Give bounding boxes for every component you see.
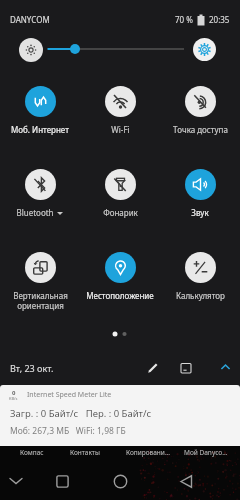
staticText: Internet Speed Meter Lite (27, 390, 112, 400)
button[interactable] (193, 38, 216, 61)
button[interactable]: Точка доступа (160, 66, 240, 149)
staticText: Компас (20, 448, 44, 457)
staticText: Фонарик (103, 207, 138, 218)
staticText: Wi-Fi (111, 124, 130, 135)
staticText: 20:35 (209, 14, 230, 25)
button[interactable]: Wi-Fi (80, 66, 160, 149)
staticText: Точка доступа (173, 124, 228, 135)
staticText: 0 (12, 389, 16, 397)
button[interactable] (144, 359, 162, 377)
staticText: Моб: 267,3 МБ WiFi: 1,98 ГБ (10, 425, 126, 437)
button[interactable]: Местоположение (80, 232, 160, 315)
staticText: 70 % (175, 14, 193, 25)
staticText: Местоположение (86, 290, 154, 301)
staticText: KB/s (9, 396, 18, 401)
staticText: Копировани... (126, 448, 171, 457)
staticText: Калькулятор (176, 290, 225, 301)
staticText: Моб. Интернет (11, 124, 69, 135)
staticText: DANYCOM (10, 14, 50, 25)
button[interactable]: Вертикальная ориентация (0, 232, 80, 315)
button[interactable] (177, 359, 195, 377)
staticText: Звук (191, 207, 209, 218)
button[interactable]: Фонарик (80, 149, 160, 232)
button[interactable]: Bluetooth (0, 149, 80, 232)
button[interactable]: Звук (160, 149, 240, 232)
button[interactable] (19, 38, 43, 62)
button[interactable]: Моб. Интернет (0, 66, 80, 149)
button[interactable]: Калькулятор (160, 232, 240, 315)
staticText: Загр. : 0 Байт/с Пер. : 0 Байт/с (10, 407, 152, 420)
staticText: Мой Danyco... (184, 448, 228, 457)
button[interactable] (217, 359, 234, 376)
staticText: Вт, 23 окт. (10, 362, 54, 374)
button[interactable] (52, 471, 72, 491)
staticText: Вертикальная ориентация (13, 290, 68, 312)
staticText: Контакты (70, 448, 100, 457)
staticText: Bluetooth (16, 207, 54, 218)
button[interactable]: 0 (0, 385, 240, 446)
button[interactable] (110, 471, 130, 491)
button[interactable] (176, 471, 196, 491)
button[interactable] (6, 471, 26, 491)
